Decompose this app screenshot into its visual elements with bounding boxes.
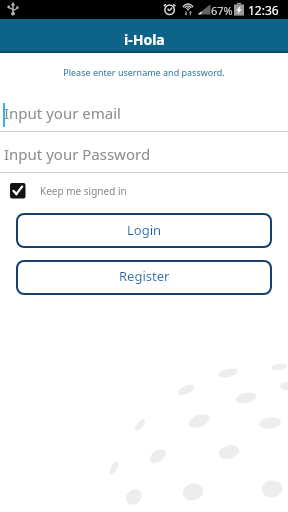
staticText: Input your email	[4, 103, 121, 123]
staticText: Keep me signed in	[40, 184, 127, 198]
staticText: Please enter username and password.	[0, 66, 288, 78]
staticText: 67%	[211, 3, 233, 18]
staticText: Login	[127, 221, 162, 239]
staticText: i-Hola	[124, 30, 165, 49]
staticText: Register	[119, 267, 170, 285]
staticText: Input your Password	[4, 144, 151, 164]
staticText: 12:36	[248, 2, 279, 18]
